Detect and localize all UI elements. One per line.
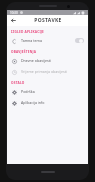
button[interactable]: Toggle dark theme [75, 38, 84, 43]
button[interactable]: Tamna tema [7, 35, 88, 46]
staticText: OSTALO [11, 81, 25, 85]
staticText: POSTAVKE [34, 17, 62, 24]
button[interactable]: Dnevne obavijesti [7, 55, 88, 66]
button[interactable]: Vrijeme primanja obavijesti [7, 66, 88, 77]
staticText: Dnevne obavijesti [21, 58, 84, 63]
button[interactable]: Aplikacija info [7, 97, 88, 108]
staticText: IZGLED APLIKACIJE [11, 30, 45, 34]
staticText: OBAVJEŠTENJA [11, 50, 37, 54]
staticText: 10:30 [10, 11, 18, 15]
staticText: Tamna tema [21, 38, 75, 43]
button[interactable]: Back [9, 16, 18, 25]
staticText: Podrška [21, 89, 84, 94]
button[interactable]: Podrška [7, 86, 88, 97]
staticText: Aplikacija info [21, 100, 84, 105]
staticText: Vrijeme primanja obavijesti [21, 69, 84, 74]
